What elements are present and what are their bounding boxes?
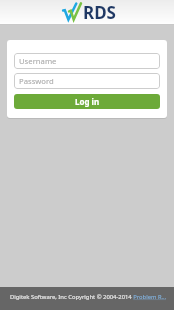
button[interactable]: WRDS home: [61, 0, 116, 24]
button[interactable]: Username: [14, 53, 160, 69]
staticText: RDS: [83, 1, 116, 24]
button[interactable]: Log in: [14, 94, 160, 109]
staticText: Digitek Software, Inc Copyright © 2004-2…: [10, 293, 166, 301]
button[interactable]: Digitek Software, Inc Copyright © 2004-2…: [0, 287, 174, 310]
other: WRDS home: [61, 0, 83, 24]
staticText: Log in: [75, 96, 100, 107]
staticText: Username: [19, 56, 57, 66]
staticText: Password: [19, 76, 54, 86]
button[interactable]: Password: [14, 73, 160, 89]
